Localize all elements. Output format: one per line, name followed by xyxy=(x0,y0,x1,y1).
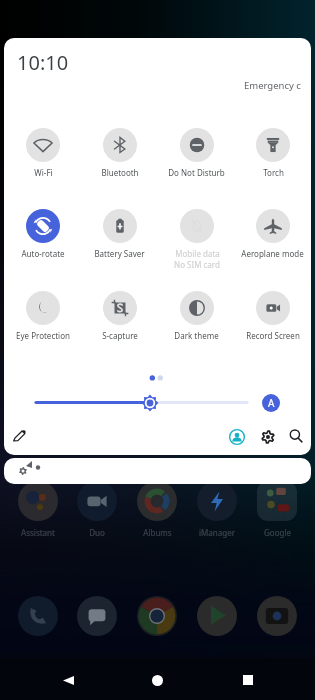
button[interactable]: Record Screen xyxy=(234,291,311,350)
staticText: Mobile data xyxy=(175,248,220,259)
staticText: Albums xyxy=(143,527,172,538)
staticText: Wi-Fi xyxy=(34,167,53,178)
button[interactable]: Auto brightness xyxy=(262,394,280,412)
button[interactable]: Torch xyxy=(234,128,311,187)
staticText: Bluetooth xyxy=(101,167,139,178)
button[interactable]: Auto-rotate xyxy=(4,209,81,268)
button[interactable]: Dark theme xyxy=(158,291,235,350)
staticText: Do Not Disturb xyxy=(168,167,225,178)
staticText: S-capture xyxy=(102,330,138,341)
button[interactable]: Home xyxy=(143,666,171,694)
staticText: Dark theme xyxy=(174,330,219,341)
button[interactable]: Wi-Fi xyxy=(4,128,81,187)
staticText: Battery Saver xyxy=(94,248,145,259)
button[interactable]: Eye Protection xyxy=(4,291,81,350)
button[interactable]: Do Not Disturb xyxy=(158,128,235,187)
staticText: Aeroplane mode xyxy=(241,248,304,259)
button[interactable]: Bluetooth xyxy=(81,128,158,187)
staticText: 10:10 xyxy=(17,49,69,76)
button[interactable]: Aeroplane mode xyxy=(234,209,311,268)
staticText: Record Screen xyxy=(246,330,300,341)
staticText: iManager xyxy=(199,527,235,538)
button[interactable]: Battery Saver xyxy=(81,209,158,268)
staticText: Torch xyxy=(263,167,284,178)
button[interactable]: Account xyxy=(225,425,249,449)
staticText: Assistant xyxy=(21,527,55,538)
staticText: Eye Protection xyxy=(16,330,70,341)
button[interactable]: Search xyxy=(284,424,308,448)
staticText: No SIM card xyxy=(174,259,220,268)
button[interactable]: Edit xyxy=(7,425,31,449)
button[interactable]: Mobile data xyxy=(158,209,235,268)
button[interactable]: Recents xyxy=(234,666,262,694)
staticText: Auto-rotate xyxy=(21,248,65,259)
staticText: Duo xyxy=(89,527,105,538)
staticText: Google xyxy=(264,527,291,538)
staticText: A xyxy=(268,396,275,410)
button[interactable]: Brightness xyxy=(137,390,163,416)
staticText: Emergency c xyxy=(244,79,301,92)
button[interactable]: Settings xyxy=(256,425,280,449)
button[interactable]: Back xyxy=(54,666,82,694)
button[interactable]: S-capture xyxy=(81,291,158,350)
